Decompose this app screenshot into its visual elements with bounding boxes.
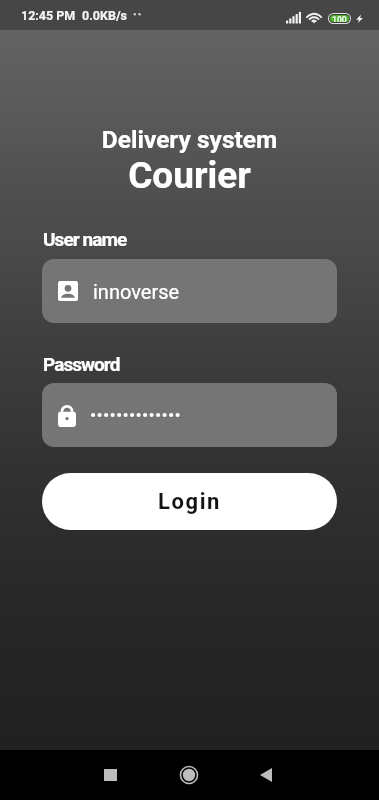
staticText: 12:45 PM xyxy=(21,8,76,23)
button[interactable]: Login xyxy=(42,473,337,530)
button[interactable]: Recent apps xyxy=(86,751,134,799)
staticText: User name xyxy=(43,228,127,250)
staticText: 0.0KB/s xyxy=(82,8,127,23)
staticText: 100 xyxy=(332,15,347,22)
staticText: Courier xyxy=(0,154,379,197)
staticText: Password xyxy=(43,353,120,375)
button[interactable] xyxy=(42,383,337,447)
button[interactable]: Home xyxy=(165,751,213,799)
button[interactable]: Back xyxy=(242,751,290,799)
staticText: Login xyxy=(158,489,222,515)
staticText: innoverse xyxy=(93,280,180,303)
staticText: Delivery system xyxy=(0,125,379,154)
button[interactable]: innoverse xyxy=(42,259,337,323)
